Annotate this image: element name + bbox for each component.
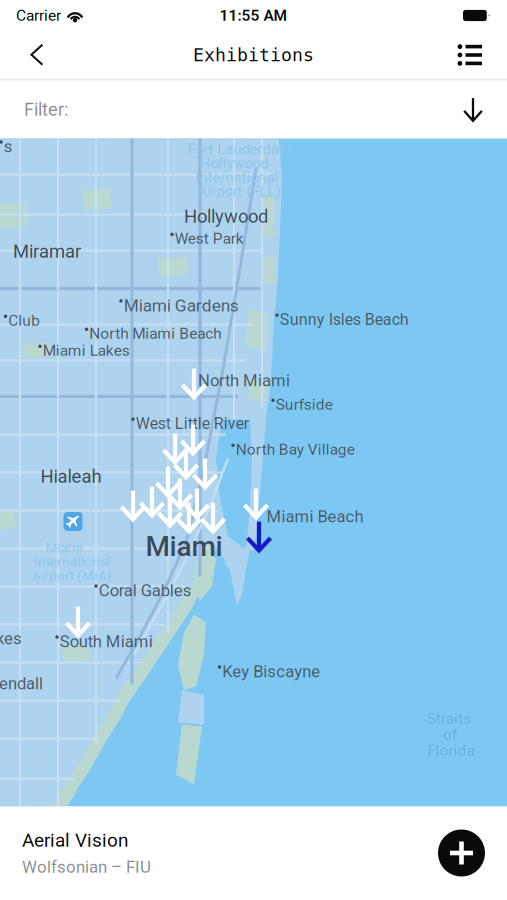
staticText: Straits — [427, 709, 471, 727]
staticText: Hialeah — [40, 466, 101, 487]
staticText: Hollywood — [184, 206, 268, 227]
staticText: Miramar — [13, 241, 81, 262]
staticText: Surfside — [276, 395, 333, 414]
staticText: West Park — [175, 229, 244, 248]
staticText: North Bay Village — [236, 440, 355, 459]
staticText: 11:55 AM — [219, 6, 287, 24]
button[interactable]: Back — [14, 31, 60, 79]
staticText: endall — [0, 674, 43, 693]
staticText: Airport (MIA) — [32, 567, 112, 583]
staticText: Carrier — [16, 6, 61, 24]
staticText: of — [443, 725, 457, 743]
staticText: Miami Lakes — [43, 341, 130, 360]
button[interactable]: Add — [438, 829, 485, 876]
staticText: Miami — [145, 530, 222, 563]
staticText: Airport (FLL) — [197, 183, 280, 200]
staticText: Hollywood — [199, 155, 268, 172]
staticText: International — [195, 169, 278, 186]
staticText: Coral Gables — [99, 581, 192, 600]
staticText: s — [4, 137, 13, 156]
staticText: Miami Beach — [266, 507, 363, 526]
staticText: Filter: — [24, 99, 68, 120]
staticText: Florida — [427, 741, 474, 759]
staticText: Exhibitions — [193, 44, 314, 65]
staticText: Sunny Isles Beach — [280, 310, 409, 329]
staticText: kes — [0, 629, 22, 648]
staticText: International — [34, 553, 110, 569]
staticText: Miami — [45, 539, 82, 555]
staticText: South Miami — [60, 632, 153, 651]
staticText: Club — [8, 311, 40, 330]
button[interactable]: List view — [447, 31, 493, 79]
staticText: West Little River — [136, 414, 249, 433]
staticText: Wolfsonian – FIU — [22, 857, 151, 877]
staticText: Aerial Vision — [22, 829, 128, 851]
button[interactable]: Filter: — [0, 80, 507, 138]
staticText: Fort Lauderdale- — [187, 141, 294, 158]
staticText: Miami Gardens — [124, 295, 239, 316]
staticText: North Miami Beach — [89, 324, 221, 343]
staticText: Key Biscayne — [222, 662, 320, 681]
staticText: North Miami — [198, 371, 290, 390]
